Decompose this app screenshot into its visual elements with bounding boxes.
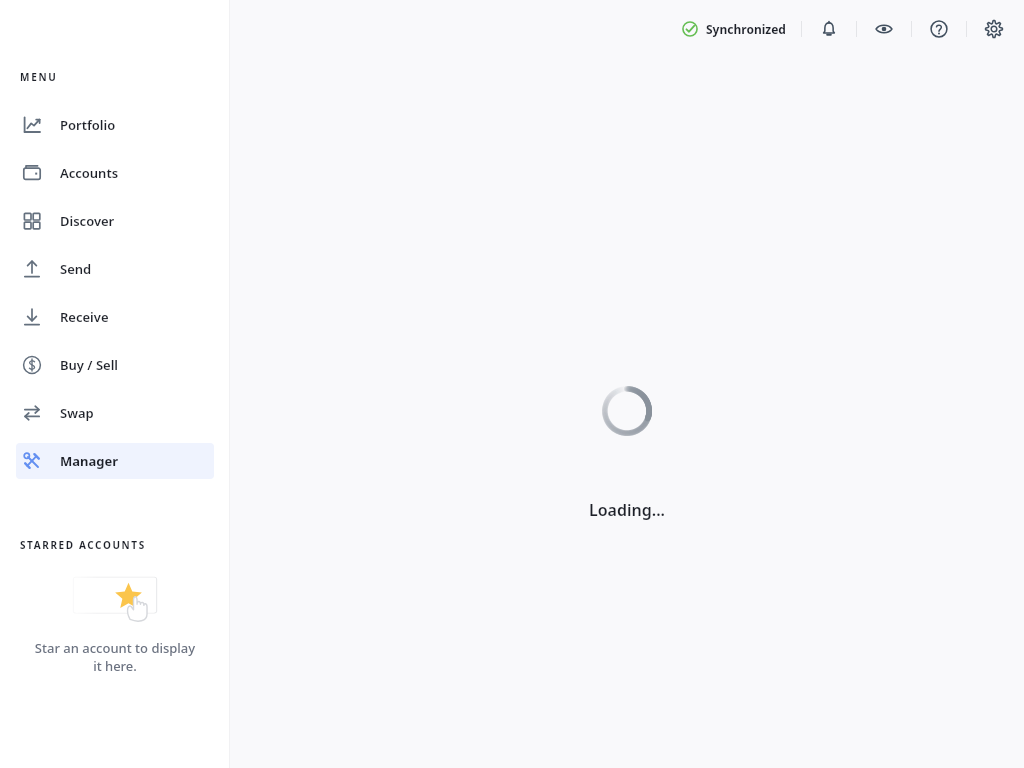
staticText: Accounts: [60, 164, 119, 182]
button[interactable]: Settings: [978, 13, 1010, 45]
staticText: Portfolio: [60, 116, 116, 134]
button[interactable]: Swap: [16, 395, 214, 431]
button[interactable]: Help: [923, 13, 955, 45]
button[interactable]: Hide balance: [868, 13, 900, 45]
button[interactable]: Synchronized: [678, 17, 790, 41]
staticText: Buy / Sell: [60, 356, 119, 374]
staticText: STARRED ACCOUNTS: [20, 538, 146, 552]
staticText: Manager: [60, 452, 119, 470]
staticText: Swap: [60, 404, 94, 422]
staticText: Star an account to display it here.: [32, 639, 198, 675]
staticText: Receive: [60, 308, 109, 326]
staticText: Loading...: [589, 499, 665, 521]
button[interactable]: Portfolio: [16, 107, 214, 143]
button[interactable]: Buy / Sell: [16, 347, 214, 383]
button[interactable]: Notifications: [813, 13, 845, 45]
staticText: Send: [60, 260, 92, 278]
button[interactable]: Manager: [16, 443, 214, 479]
button[interactable]: Discover: [16, 203, 214, 239]
staticText: MENU: [20, 70, 58, 84]
button[interactable]: Send: [16, 251, 214, 287]
button[interactable]: Receive: [16, 299, 214, 335]
staticText: Discover: [60, 212, 115, 230]
button[interactable]: Accounts: [16, 155, 214, 191]
staticText: Synchronized: [706, 21, 786, 37]
